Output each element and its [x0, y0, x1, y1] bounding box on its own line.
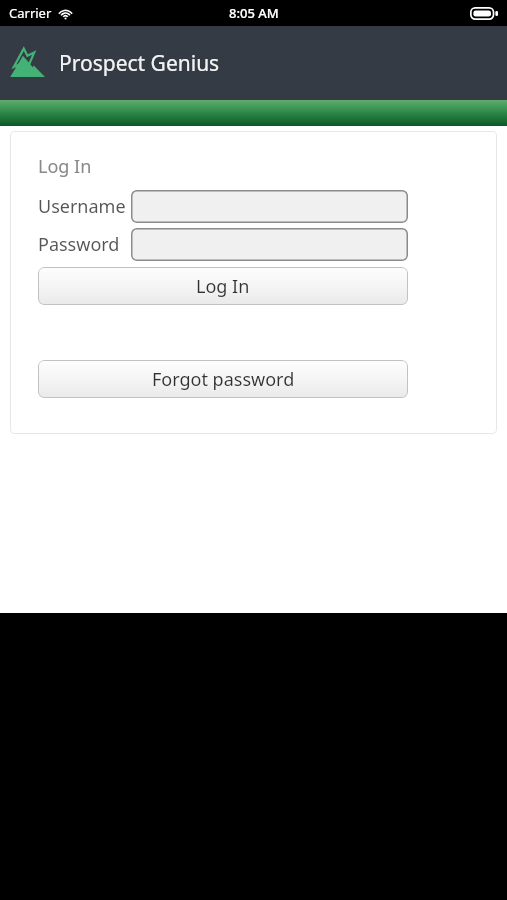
- button[interactable]: Forgot password: [38, 360, 408, 398]
- staticText: Password: [38, 232, 120, 257]
- staticText: 8:05 AM: [229, 4, 279, 22]
- staticText: Prospect Genius: [59, 49, 220, 78]
- staticText: Log In: [38, 154, 92, 179]
- staticText: Username: [38, 194, 126, 219]
- button[interactable]: Username: [131, 190, 408, 223]
- staticText: Forgot password: [152, 367, 295, 392]
- button[interactable]: Password: [131, 228, 408, 261]
- button[interactable]: Log In: [38, 267, 408, 305]
- staticText: Log In: [196, 274, 250, 299]
- staticText: Carrier: [9, 4, 52, 22]
